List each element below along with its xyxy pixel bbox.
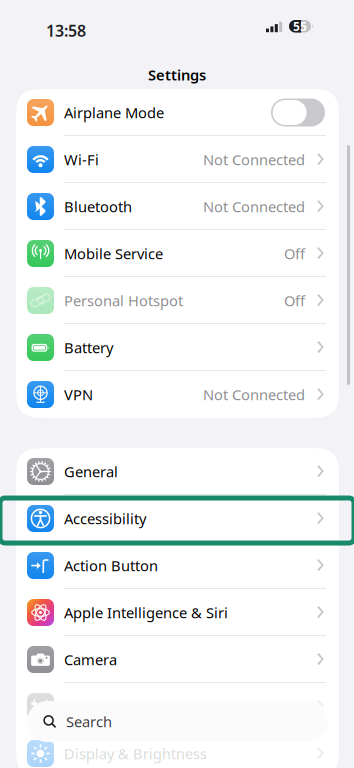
- button[interactable]: Camera: [16, 636, 339, 683]
- staticText: Not Connected: [203, 385, 305, 404]
- staticText: Not Connected: [203, 197, 305, 216]
- button[interactable]: Airplane Mode: [16, 89, 339, 136]
- button[interactable]: Apple Intelligence & Siri: [16, 589, 339, 636]
- staticText: 13:58: [46, 20, 86, 41]
- staticText: General: [64, 462, 118, 481]
- button[interactable]: General: [16, 448, 339, 495]
- staticText: Camera: [64, 650, 117, 669]
- staticText: Search: [66, 712, 112, 731]
- staticText: Battery: [64, 338, 113, 357]
- button[interactable]: Battery: [16, 324, 339, 371]
- staticText: Off: [284, 291, 305, 310]
- button[interactable]: Mobile Service: [16, 230, 339, 277]
- staticText: Airplane Mode: [64, 103, 164, 122]
- staticText: Bluetooth: [64, 197, 132, 216]
- staticText: Not Connected: [203, 150, 305, 169]
- button[interactable]: Accessibility: [16, 495, 339, 542]
- button[interactable]: Search: [27, 701, 328, 742]
- staticText: Off: [284, 244, 305, 263]
- button[interactable]: Action Button: [16, 542, 339, 589]
- staticText: Wi-Fi: [64, 150, 99, 169]
- staticText: Apple Intelligence & Siri: [64, 603, 228, 622]
- staticText: Personal Hotspot: [64, 291, 183, 310]
- staticText: Display & Brightness: [64, 744, 207, 763]
- staticText: Action Button: [64, 556, 158, 575]
- staticText: Settings: [148, 65, 206, 84]
- button[interactable]: VPN: [16, 371, 339, 418]
- button[interactable]: Personal Hotspot: [16, 277, 339, 324]
- staticText: 55: [293, 18, 307, 34]
- staticText: Accessibility: [64, 509, 146, 528]
- staticText: VPN: [64, 385, 93, 404]
- staticText: Mobile Service: [64, 244, 163, 263]
- button[interactable]: Bluetooth: [16, 183, 339, 230]
- button[interactable]: Wi-Fi: [16, 136, 339, 183]
